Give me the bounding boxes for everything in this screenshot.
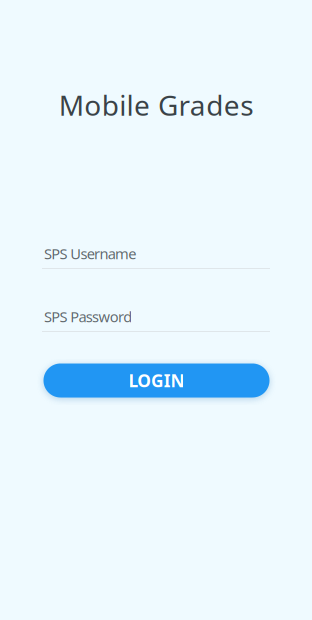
staticText: Mobile Grades — [59, 86, 253, 124]
button[interactable]: SPS Username — [44, 241, 270, 265]
button[interactable]: SPS Password — [44, 304, 270, 328]
staticText: SPS Password — [44, 307, 132, 326]
staticText: LOGIN — [129, 369, 184, 392]
button[interactable]: LOGIN — [43, 363, 269, 397]
staticText: SPS Username — [44, 244, 136, 263]
